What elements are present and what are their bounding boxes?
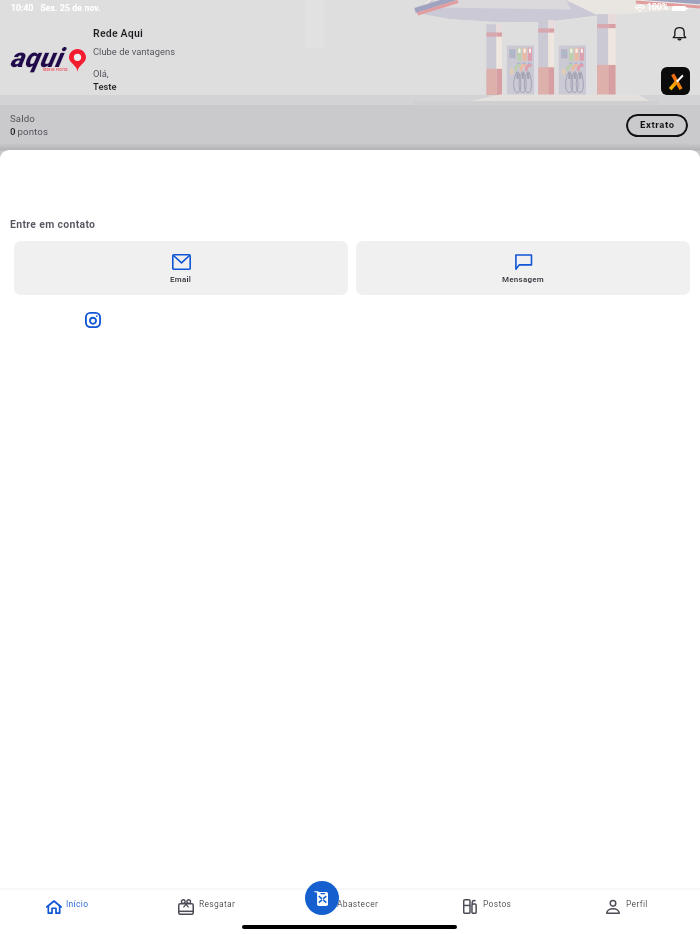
staticText: Teste [93,81,117,92]
button[interactable]: Resgatar [140,889,280,934]
staticText: Resgatar [199,899,236,909]
button[interactable]: Notificações [666,21,692,47]
button[interactable]: Programa de pontos [661,67,690,95]
staticText: Entre em contato [10,218,96,230]
button[interactable]: Perfil [560,889,700,934]
staticText: 100% [647,2,669,12]
staticText: pontos [15,126,49,137]
staticText: REDE DE POSTOS [43,68,68,71]
staticText: Clube de vantagens [93,46,175,57]
staticText: Extrato [640,119,675,130]
staticText: aqui [10,42,62,74]
button[interactable]: Extrato [626,114,688,137]
staticText: 10:40 Sex. 25 de nov. [11,3,101,13]
staticText: Mensagem [502,275,545,284]
staticText: Perfil [626,899,648,909]
staticText: Abastecer [337,899,379,909]
button[interactable]: Mensagem [356,241,690,295]
staticText: Início [66,899,89,909]
button[interactable]: Início [0,889,140,934]
staticText: Email [170,275,192,284]
staticText: Olá, [93,68,109,79]
button[interactable]: Abastecer [280,889,420,934]
staticText: Rede Aqui [93,27,144,39]
staticText: Postos [483,899,512,909]
staticText: Saldo [10,113,35,124]
button[interactable]: Email [14,241,348,295]
button[interactable]: Postos [420,889,560,934]
button[interactable]: Instagram [77,304,108,335]
staticText: 0 [10,126,16,137]
